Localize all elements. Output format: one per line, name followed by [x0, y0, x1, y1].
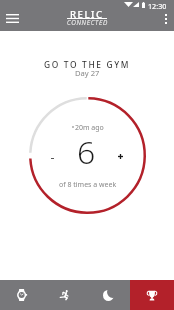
- button[interactable]: Menu: [0, 8, 24, 28]
- staticText: of 8 times a week: [59, 180, 117, 190]
- staticText: RELIC: [70, 8, 104, 21]
- button[interactable]: Sleep: [86, 280, 130, 310]
- button[interactable]: Watch: [0, 280, 43, 310]
- staticText: 6: [77, 130, 96, 174]
- button[interactable]: Decrease: [41, 147, 63, 169]
- button[interactable]: Activity: [43, 280, 86, 310]
- staticText: 12:30: [148, 1, 167, 11]
- staticText: CONNECTED: [67, 18, 108, 27]
- staticText: Day 27: [75, 68, 100, 78]
- staticText: GO TO THE GYM: [44, 59, 131, 70]
- button[interactable]: More options: [155, 9, 174, 29]
- staticText: 20m ago: [75, 123, 104, 133]
- button[interactable]: Increase: [109, 145, 131, 167]
- button[interactable]: Goals: [130, 280, 174, 310]
